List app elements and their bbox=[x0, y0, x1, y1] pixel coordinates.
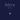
staticText: Asleep bbox=[5, 3, 15, 7]
button[interactable]: Start bbox=[9, 12, 11, 14]
staticText: 6h bbox=[8, 6, 12, 10]
